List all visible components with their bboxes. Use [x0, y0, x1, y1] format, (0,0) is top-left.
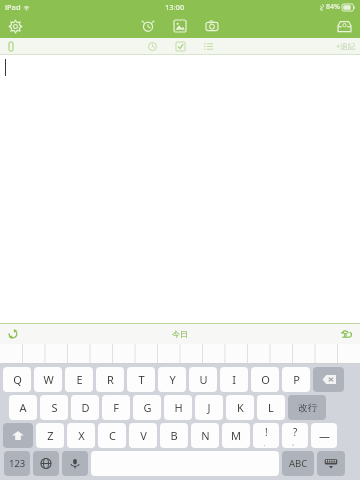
button[interactable]: I [220, 367, 248, 392]
staticText: P [293, 372, 300, 387]
button[interactable]: P [282, 367, 310, 392]
button[interactable]: K [226, 395, 254, 420]
staticText: 123 [9, 457, 26, 470]
staticText: 改行 [298, 402, 317, 414]
staticText: 、 [263, 439, 269, 447]
staticText: O [261, 372, 270, 387]
button[interactable]: Z [36, 423, 64, 448]
button[interactable]: B [160, 423, 188, 448]
button[interactable]: E [65, 367, 93, 392]
staticText: L [268, 400, 274, 415]
staticText: C [109, 428, 116, 443]
staticText: B [170, 428, 178, 443]
button[interactable]: ABC [282, 451, 314, 476]
staticText: T [138, 372, 145, 387]
staticText: 今日 [172, 329, 188, 339]
button[interactable]: U [189, 367, 217, 392]
staticText: — [319, 428, 330, 443]
staticText: M [231, 428, 241, 443]
staticText: 。 [292, 439, 298, 447]
button[interactable]: — [311, 423, 337, 448]
staticText: 84% [326, 2, 340, 12]
staticText: A [19, 400, 27, 415]
staticText: ! [265, 425, 268, 439]
staticText: X [78, 428, 85, 443]
staticText: Z [47, 428, 54, 443]
button[interactable]: Backspace [313, 367, 344, 392]
button[interactable]: Shift [3, 423, 33, 448]
button[interactable]: L [257, 395, 285, 420]
button[interactable]: Dictation [62, 451, 88, 476]
staticText: H [174, 400, 183, 415]
staticText: N [201, 428, 210, 443]
staticText: +追記 [336, 41, 356, 51]
button[interactable]: Y [158, 367, 186, 392]
staticText: F [113, 400, 119, 415]
button[interactable]: Alarm [135, 14, 161, 38]
button[interactable]: W [34, 367, 62, 392]
button[interactable]: 123 [4, 451, 30, 476]
staticText: U [199, 372, 208, 387]
staticText: iPad [5, 2, 21, 12]
button[interactable]: O [251, 367, 279, 392]
button[interactable]: N [191, 423, 219, 448]
staticText: Q [13, 372, 22, 387]
button[interactable]: Camera [199, 14, 225, 38]
button[interactable]: C [98, 423, 126, 448]
button[interactable]: Language [33, 451, 59, 476]
button[interactable]: A [9, 395, 37, 420]
staticText: W [43, 372, 54, 387]
button[interactable]: Archive [333, 15, 355, 37]
staticText: Y [169, 372, 176, 387]
staticText: 13:00 [165, 2, 185, 12]
staticText: ? [293, 425, 298, 439]
button[interactable]: S [40, 395, 68, 420]
button[interactable]: ? [282, 423, 308, 448]
staticText: S [51, 400, 58, 415]
button[interactable]: 改行 [288, 395, 326, 420]
button[interactable]: +追記 [336, 41, 356, 51]
button[interactable]: G [133, 395, 161, 420]
button[interactable]: Q [3, 367, 31, 392]
button[interactable]: X [67, 423, 95, 448]
button[interactable]: List [199, 38, 217, 54]
button[interactable]: Refresh [5, 326, 21, 342]
staticText: J [207, 400, 211, 415]
button[interactable]: F [102, 395, 130, 420]
button[interactable]: Hide keyboard [317, 451, 345, 476]
staticText: G [143, 400, 152, 415]
button[interactable]: Settings [4, 15, 26, 37]
staticText: V [140, 428, 147, 443]
button[interactable]: T [127, 367, 155, 392]
staticText: R [107, 372, 114, 387]
staticText: K [237, 400, 244, 415]
button[interactable]: J [195, 395, 223, 420]
button[interactable]: R [96, 367, 124, 392]
button[interactable]: Photo [167, 14, 193, 38]
button[interactable]: Checkbox [171, 38, 189, 54]
button[interactable]: D [71, 395, 99, 420]
staticText: D [81, 400, 90, 415]
button[interactable]: Attach [4, 39, 18, 53]
button[interactable]: M [222, 423, 250, 448]
button[interactable]: Upload [338, 326, 354, 342]
staticText: E [76, 372, 83, 387]
button[interactable]: ! [253, 423, 279, 448]
staticText: I [232, 372, 236, 387]
button[interactable]: Time [143, 38, 161, 54]
staticText: ABC [289, 457, 308, 470]
button[interactable]: H [164, 395, 192, 420]
button[interactable]: V [129, 423, 157, 448]
